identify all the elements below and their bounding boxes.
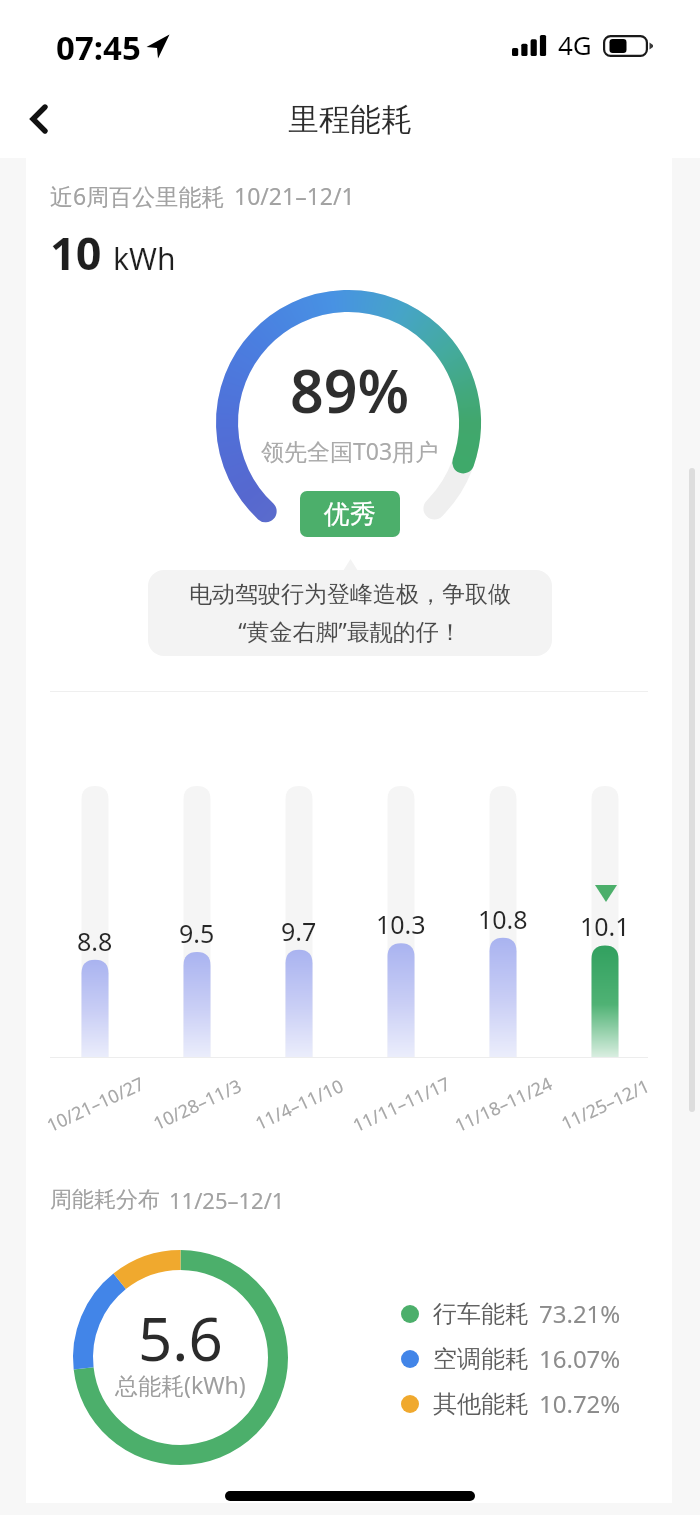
button[interactable]: Back [9,96,55,142]
staticText: 里程能耗 [288,100,412,139]
staticText: 11/11–11/17 [349,1071,454,1138]
staticText: 电动驾驶行为登峰造极，争取做 “黄金右脚”最靓的仔！ [189,580,511,647]
staticText: kWh [113,238,176,279]
staticText: 10/21–10/27 [43,1071,148,1138]
staticText: 空调能耗 [433,1344,529,1374]
button[interactable]: 空调能耗 [401,1342,621,1375]
staticText: 16.07% [539,1342,621,1375]
button[interactable]: 行车能耗 [401,1297,621,1330]
staticText: 10/21–12/1 [234,180,355,211]
button[interactable]: 优秀 [300,491,400,537]
staticText: 近6周百公里能耗 [50,180,225,211]
staticText: 9.7 [281,914,317,948]
staticText: 73.21% [539,1297,621,1330]
staticText: 8.8 [77,924,113,958]
staticText: 07:45 [56,25,141,70]
staticText: 4G [558,27,592,62]
staticText: 11/25–12/1 [557,1073,654,1136]
button[interactable]: 其他能耗 [401,1387,621,1420]
staticText: 10.8 [478,902,528,936]
staticText: 5.6 [138,1297,223,1379]
staticText: 周能耗分布 [50,1186,160,1214]
staticText: 10.3 [376,907,426,941]
staticText: 领先全国T03用户 [261,435,439,466]
staticText: 11/4–11/10 [251,1073,348,1136]
staticText: 9.5 [179,916,215,950]
staticText: 其他能耗 [433,1389,529,1419]
staticText: 10/28–11/3 [149,1073,246,1136]
staticText: 行车能耗 [433,1299,529,1329]
staticText: 总能耗(kWh) [115,1369,246,1400]
staticText: 89% [290,350,410,430]
staticText: 11/18–11/24 [451,1071,556,1138]
staticText: 11/25–12/1 [169,1185,285,1215]
staticText: 10.1 [580,909,630,943]
staticText: 10.72% [539,1387,621,1420]
staticText: 10 [50,222,102,283]
staticText: 优秀 [324,498,376,531]
